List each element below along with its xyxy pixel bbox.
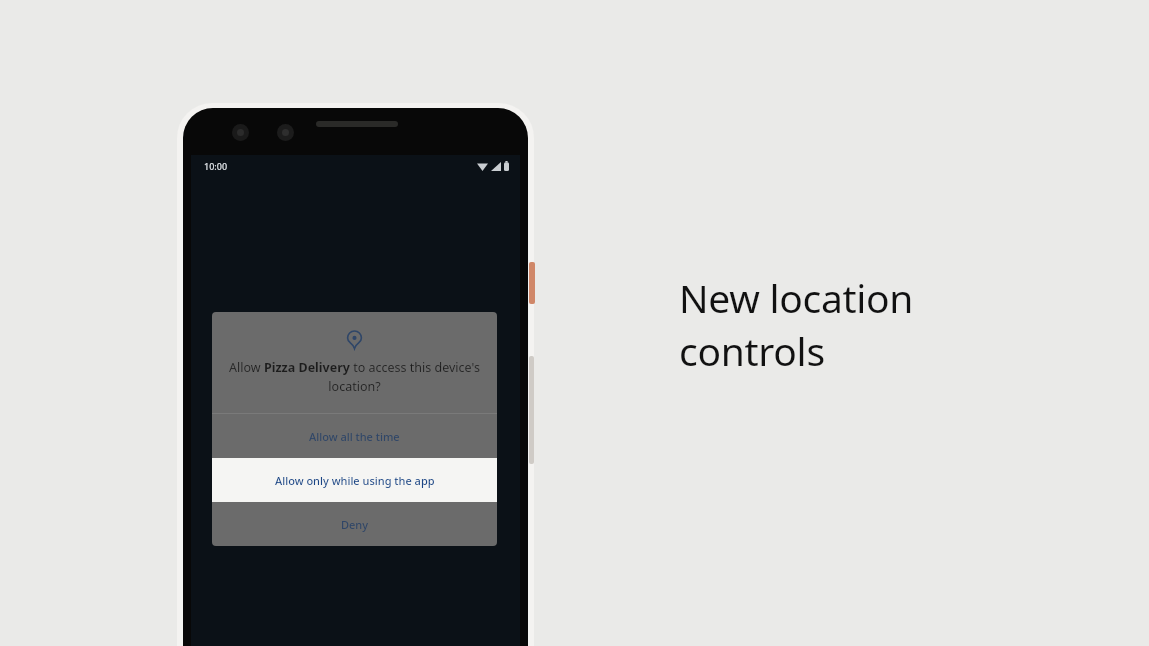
staticText: New location (679, 271, 914, 324)
staticText: Allow only while using the app (275, 473, 435, 488)
staticText: 10:00 (204, 160, 228, 172)
staticText: Deny (341, 517, 369, 532)
other: Location (347, 330, 362, 349)
staticText: controls (679, 324, 825, 377)
button[interactable]: Allow all the time (212, 414, 497, 458)
button[interactable]: Allow only while using the app (212, 458, 497, 502)
button[interactable]: Deny (212, 502, 497, 546)
staticText: Allow all the time (309, 429, 400, 444)
staticText: Allow Pizza Delivery to access this devi… (222, 359, 487, 395)
